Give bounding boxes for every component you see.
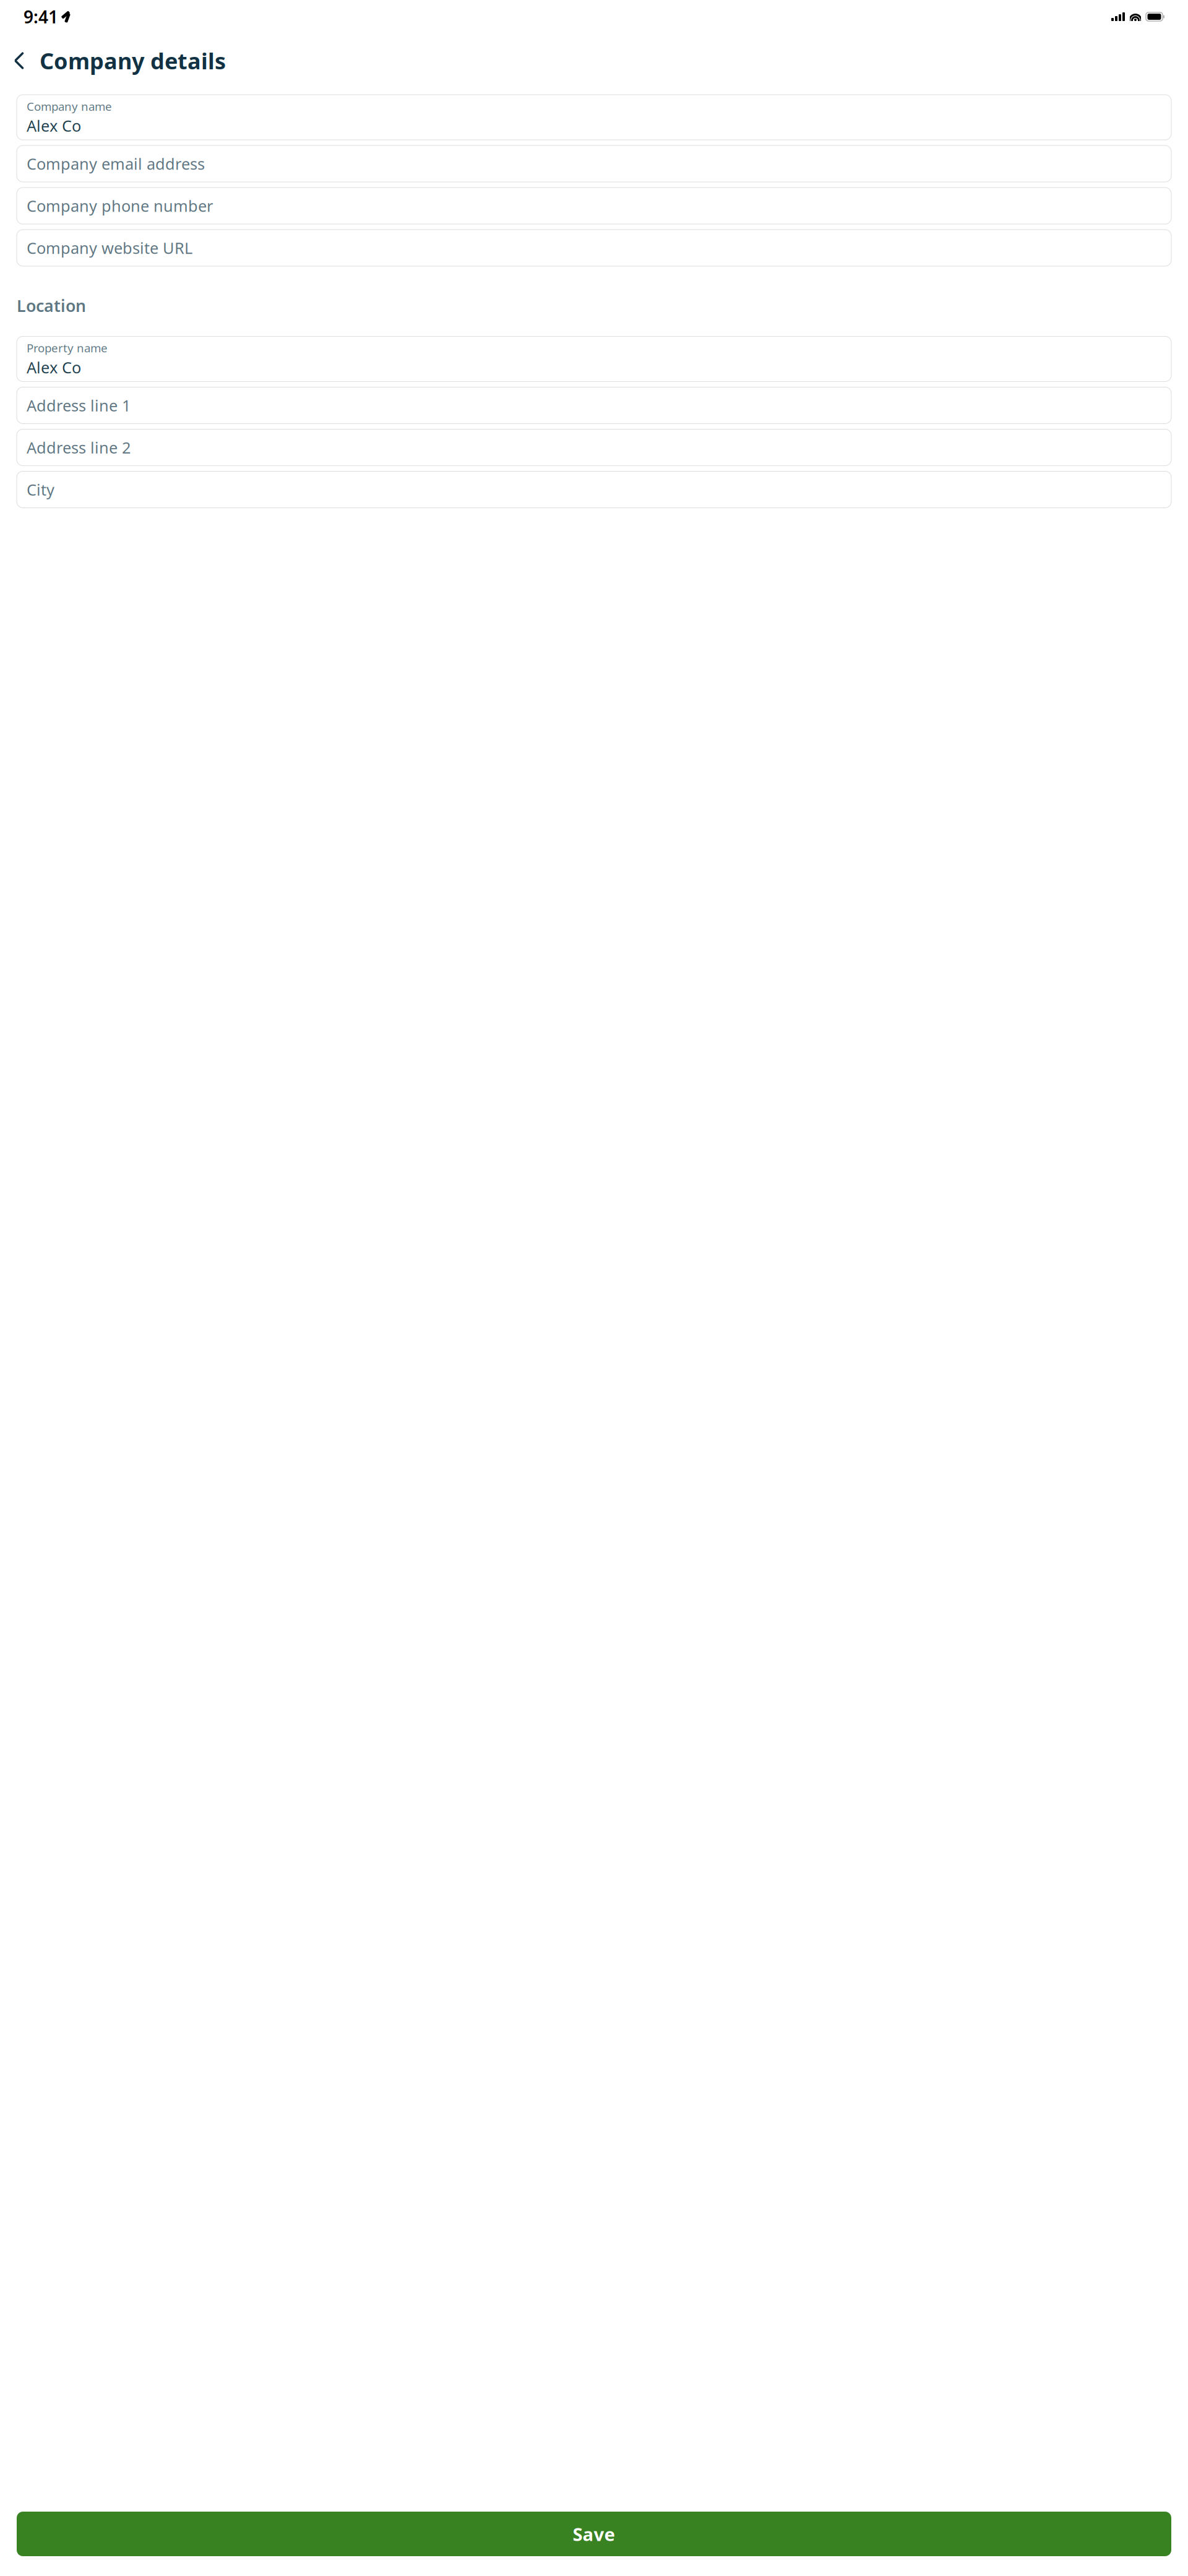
staticText: City: [27, 479, 54, 500]
staticText: Company name: [27, 99, 112, 114]
staticText: Save: [573, 2522, 615, 2546]
button[interactable]: Company name: [17, 95, 1171, 140]
button[interactable]: City: [17, 471, 1171, 508]
staticText: Property name: [27, 340, 108, 356]
staticText: Company website URL: [27, 237, 192, 258]
staticText: Alex Co: [27, 357, 81, 378]
button[interactable]: Company phone number: [17, 188, 1171, 224]
staticText: 9:41: [24, 5, 58, 28]
staticText: Location: [17, 295, 86, 317]
staticText: Company phone number: [27, 195, 213, 216]
button[interactable]: Address line 1: [17, 387, 1171, 424]
staticText: Alex Co: [27, 115, 81, 136]
staticText: Address line 2: [27, 437, 131, 458]
staticText: Company details: [40, 46, 226, 75]
button[interactable]: Company website URL: [17, 230, 1171, 266]
button[interactable]: Back: [7, 47, 31, 74]
staticText: Company email address: [27, 153, 205, 174]
button[interactable]: Company email address: [17, 145, 1171, 182]
button[interactable]: Property name: [17, 336, 1171, 382]
button[interactable]: Save: [17, 2512, 1171, 2556]
button[interactable]: Address line 2: [17, 429, 1171, 466]
staticText: Address line 1: [27, 395, 131, 416]
